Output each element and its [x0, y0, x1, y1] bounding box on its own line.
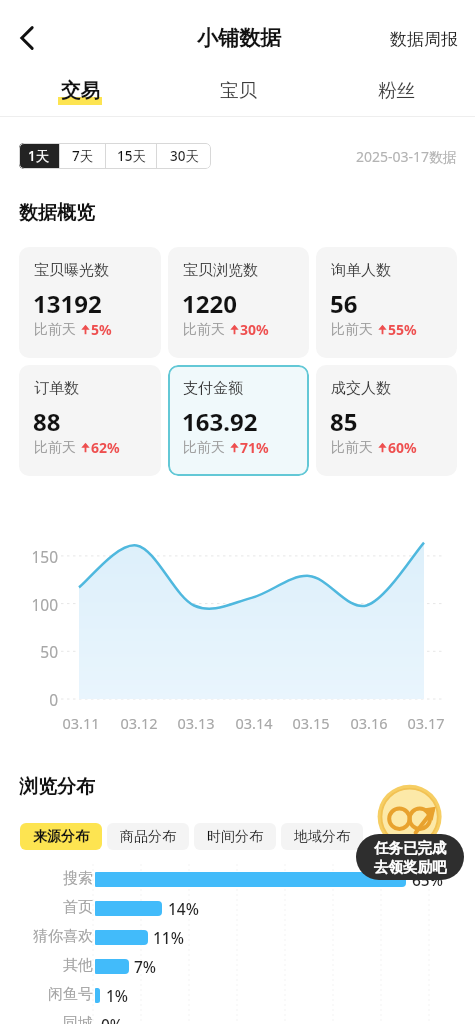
staticText: 首页 — [12, 898, 93, 917]
staticText: 宝贝 — [220, 79, 257, 102]
staticText: 30天 — [170, 147, 199, 165]
staticText: 任务已完成 — [374, 839, 447, 857]
staticText: 56 — [330, 287, 358, 320]
staticText: 小铺数据 — [197, 25, 281, 51]
button[interactable]: Back — [6, 17, 48, 59]
staticText: 88 — [33, 405, 61, 438]
button[interactable]: 30天 — [157, 143, 211, 169]
staticText: 询单人数 — [331, 261, 391, 280]
staticText: 0 — [18, 689, 58, 710]
staticText: 商品分布 — [120, 828, 176, 846]
button[interactable]: 询单人数 — [316, 247, 457, 358]
staticText: 03.16 — [343, 713, 395, 733]
staticText: 比前天 — [34, 439, 76, 457]
staticText: 浏览分布 — [19, 775, 95, 799]
button[interactable]: Reward task completed — [356, 784, 475, 884]
staticText: 地域分布 — [294, 828, 350, 846]
button[interactable]: 数据周报 — [390, 29, 458, 50]
staticText: 数据周报 — [390, 29, 458, 50]
staticText: 支付金额 — [183, 379, 243, 398]
staticText: 比前天 — [331, 439, 373, 457]
staticText: 163.92 — [182, 405, 258, 438]
staticText: 2025-03-17数据 — [356, 147, 458, 166]
button[interactable]: 宝贝浏览数 — [168, 247, 309, 358]
staticText: 03.13 — [170, 713, 222, 733]
staticText: 50 — [18, 641, 58, 662]
button[interactable]: 交易 — [0, 63, 159, 118]
staticText: 100 — [18, 594, 58, 615]
staticText: 03.14 — [228, 713, 280, 733]
button[interactable]: 时间分布 — [194, 823, 276, 850]
staticText: 03.15 — [285, 713, 337, 733]
staticText: 150 — [18, 546, 58, 567]
staticText: 60% — [388, 438, 417, 457]
button[interactable]: 成交人数 — [316, 365, 457, 476]
staticText: 比前天 — [183, 321, 225, 339]
button[interactable]: 支付金额 — [168, 365, 309, 476]
button[interactable]: 宝贝 — [159, 63, 317, 118]
staticText: 7天 — [72, 147, 94, 165]
staticText: 成交人数 — [331, 379, 391, 398]
staticText: 15天 — [117, 147, 146, 165]
staticText: 订单数 — [34, 379, 79, 398]
staticText: 同城 — [12, 1014, 93, 1024]
staticText: 65% — [412, 869, 443, 890]
staticText: 1% — [106, 985, 129, 1006]
staticText: 30% — [240, 320, 269, 339]
staticText: 去领奖励吧 — [374, 858, 447, 876]
staticText: 搜索 — [12, 869, 93, 888]
staticText: 来源分布 — [33, 828, 89, 846]
staticText: 71% — [240, 438, 269, 457]
staticText: 03.12 — [113, 713, 165, 733]
staticText: 03.11 — [55, 713, 107, 733]
button[interactable]: 1天 — [19, 143, 59, 169]
staticText: 比前天 — [183, 439, 225, 457]
staticText: 数据概览 — [19, 201, 95, 225]
staticText: 交易 — [61, 78, 100, 103]
staticText: 粉丝 — [378, 79, 415, 102]
staticText: 11% — [153, 927, 184, 948]
staticText: 85 — [330, 405, 358, 438]
staticText: 比前天 — [331, 321, 373, 339]
button[interactable]: 宝贝曝光数 — [19, 247, 161, 358]
staticText: 比前天 — [34, 321, 76, 339]
staticText: 14% — [168, 898, 199, 919]
button[interactable]: 订单数 — [19, 365, 161, 476]
button[interactable]: 商品分布 — [107, 823, 189, 850]
staticText: 时间分布 — [207, 828, 263, 846]
staticText: 55% — [388, 320, 417, 339]
button[interactable]: 7天 — [60, 143, 105, 169]
staticText: 宝贝浏览数 — [183, 261, 258, 280]
staticText: 其他 — [12, 956, 93, 975]
staticText: 1220 — [182, 287, 237, 320]
staticText: 闲鱼号 — [12, 985, 93, 1004]
button[interactable]: 15天 — [106, 143, 156, 169]
staticText: 5% — [91, 320, 112, 339]
staticText: 1天 — [28, 147, 50, 165]
staticText: 13192 — [33, 287, 102, 320]
staticText: 62% — [91, 438, 120, 457]
staticText: 宝贝曝光数 — [34, 261, 109, 280]
staticText: 0% — [101, 1014, 124, 1024]
button[interactable]: 来源分布 — [20, 823, 102, 850]
staticText: 7% — [134, 956, 157, 977]
button[interactable]: 地域分布 — [281, 823, 363, 850]
staticText: 03.17 — [400, 713, 452, 733]
button[interactable]: 粉丝 — [317, 63, 475, 118]
staticText: 猜你喜欢 — [12, 927, 93, 946]
